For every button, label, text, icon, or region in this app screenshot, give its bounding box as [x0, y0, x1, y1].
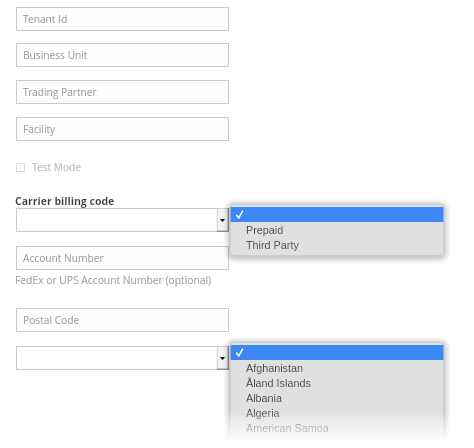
staticText: Postal Code: [23, 313, 80, 327]
staticText: Facility: [23, 122, 56, 136]
button[interactable]: Test Mode: [16, 160, 82, 174]
button[interactable]: American Samoa: [230, 420, 444, 435]
staticText: FedEx or UPS Account Number (optional): [15, 273, 212, 287]
staticText: Business Unit: [23, 48, 88, 62]
staticText: Prepaid: [246, 224, 284, 236]
button[interactable]: Selected blank option: [230, 207, 444, 222]
button[interactable]: Open dropdown: [16, 346, 229, 370]
staticText: Account Number: [23, 251, 104, 265]
staticText: Carrier billing code: [15, 194, 115, 208]
button[interactable]: Trading Partner: [16, 80, 229, 104]
staticText: Trading Partner: [23, 85, 97, 99]
button[interactable]: Tenant Id: [16, 7, 229, 31]
staticText: Algeria: [246, 407, 280, 419]
button[interactable]: Facility: [16, 117, 229, 141]
staticText: Åland Islands: [246, 377, 311, 389]
button[interactable]: Algeria: [230, 405, 444, 420]
button[interactable]: Selected blank option: [230, 345, 444, 360]
button[interactable]: Open dropdown: [16, 208, 229, 232]
staticText: American Samoa: [246, 422, 329, 434]
button[interactable]: Third Party: [230, 237, 444, 252]
button[interactable]: Åland Islands: [230, 375, 444, 390]
button[interactable]: Prepaid: [230, 222, 444, 237]
button[interactable]: Afghanistan: [230, 360, 444, 375]
staticText: Third Party: [246, 239, 299, 251]
staticText: Test Mode: [32, 160, 82, 174]
staticText: Tenant Id: [23, 12, 68, 26]
button[interactable]: Account Number: [16, 246, 229, 270]
button[interactable]: Postal Code: [16, 308, 229, 332]
staticText: Albania: [246, 392, 283, 404]
staticText: Afghanistan: [246, 362, 304, 374]
button[interactable]: Albania: [230, 390, 444, 405]
button[interactable]: Business Unit: [16, 43, 229, 67]
